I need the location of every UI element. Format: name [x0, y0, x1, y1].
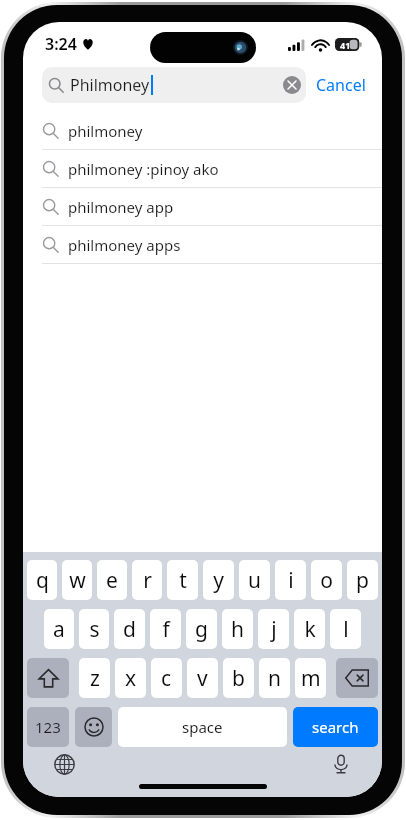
staticText: philmoney [68, 121, 143, 141]
button[interactable]: Cancel [306, 68, 368, 102]
button[interactable]: search [293, 707, 378, 747]
staticText: k [304, 615, 316, 644]
button[interactable]: a [44, 609, 74, 649]
staticText: 123 [35, 717, 61, 737]
button[interactable]: y [203, 560, 234, 600]
staticText: e [106, 566, 118, 595]
staticText: b [232, 664, 245, 693]
staticText: n [268, 664, 281, 693]
button[interactable]: philmoney apps [23, 226, 382, 263]
staticText: philmoney app [68, 197, 174, 217]
button[interactable]: x [115, 658, 146, 698]
button[interactable]: q [27, 560, 57, 600]
button[interactable]: t [167, 560, 198, 600]
staticText: v [197, 664, 208, 693]
staticText: a [53, 615, 65, 644]
button[interactable]: Emoji [75, 707, 112, 747]
staticText: p [356, 566, 369, 595]
staticText: q [36, 566, 49, 595]
button[interactable]: f [150, 609, 181, 649]
button[interactable]: r [132, 560, 162, 600]
button[interactable]: Clear text [283, 76, 301, 94]
staticText: t [179, 566, 187, 595]
button[interactable]: philmoney [23, 112, 382, 149]
staticText: Cancel [316, 74, 366, 96]
button[interactable]: c [151, 658, 182, 698]
button[interactable]: p [347, 560, 378, 600]
staticText: w [69, 566, 86, 595]
staticText: l [343, 615, 349, 644]
staticText: d [123, 615, 136, 644]
staticText: u [248, 566, 261, 595]
button[interactable]: l [330, 609, 361, 649]
staticText: o [320, 566, 333, 595]
button[interactable]: h [222, 609, 253, 649]
button[interactable]: w [62, 560, 92, 600]
staticText: 3:24 [45, 33, 77, 55]
button[interactable]: m [295, 658, 326, 698]
button[interactable]: u [239, 560, 270, 600]
button[interactable]: i [275, 560, 306, 600]
button[interactable]: Delete [336, 658, 378, 698]
button[interactable]: o [311, 560, 342, 600]
button[interactable]: Change keyboard language [49, 749, 79, 779]
staticText: space [182, 717, 223, 737]
staticText: j [271, 615, 277, 644]
button[interactable]: e [97, 560, 127, 600]
button[interactable]: Shift [27, 658, 69, 698]
button[interactable]: v [187, 658, 218, 698]
staticText: search [312, 717, 359, 737]
button[interactable]: z [79, 658, 110, 698]
staticText: z [90, 664, 100, 693]
button[interactable]: j [258, 609, 289, 649]
button[interactable]: b [223, 658, 254, 698]
staticText: 41 [340, 39, 351, 51]
button[interactable]: 123 [27, 707, 69, 747]
staticText: x [125, 664, 137, 693]
staticText: i [288, 566, 294, 595]
button[interactable]: philmoney :pinoy ako [23, 150, 382, 187]
staticText: m [301, 664, 321, 693]
staticText: r [143, 566, 152, 595]
staticText: y [213, 566, 224, 595]
button[interactable]: Philmoney [42, 67, 306, 103]
staticText: philmoney :pinoy ako [68, 159, 219, 179]
button[interactable]: g [186, 609, 217, 649]
staticText: philmoney apps [68, 235, 181, 255]
button[interactable]: n [259, 658, 290, 698]
staticText: c [161, 664, 172, 693]
button[interactable]: space [118, 707, 287, 747]
button[interactable]: s [79, 609, 109, 649]
button[interactable]: k [294, 609, 325, 649]
staticText: s [89, 615, 100, 644]
staticText: Philmoney [70, 74, 150, 96]
staticText: g [195, 615, 208, 644]
staticText: f [162, 615, 170, 644]
staticText: h [231, 615, 244, 644]
button[interactable]: d [114, 609, 145, 649]
button[interactable]: Dictation [326, 749, 356, 779]
button[interactable]: philmoney app [23, 188, 382, 225]
